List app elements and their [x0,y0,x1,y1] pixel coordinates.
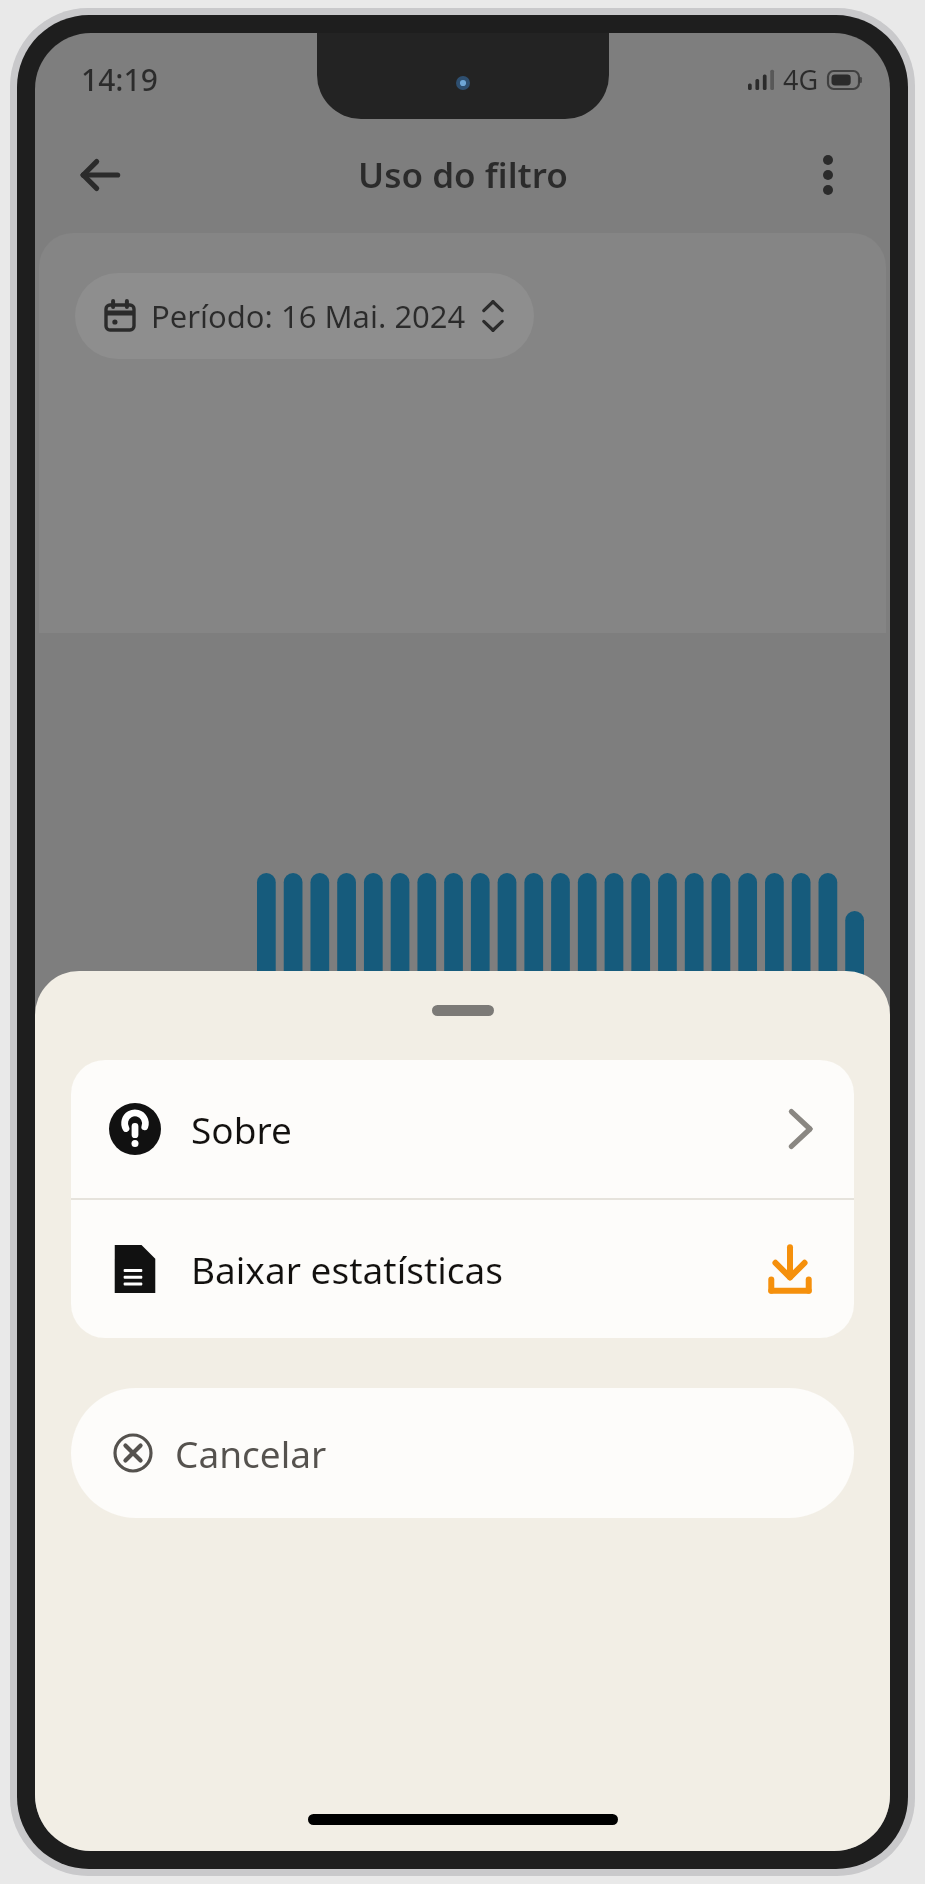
staticText: Baixar estatísticas [191,1244,504,1294]
button[interactable]: Mais opções [792,139,864,211]
staticText: 4G [783,61,819,98]
button[interactable]: Sobre [71,1060,854,1198]
button[interactable]: Período: 16 Mai. 2024 [75,273,534,359]
button[interactable]: Voltar [61,136,139,214]
staticText: Uso do filtro [358,151,568,199]
staticText: Período: 16 Mai. 2024 [151,295,466,337]
button[interactable]: Baixar estatísticas [71,1200,854,1338]
staticText: 14:19 [81,59,158,100]
staticText: Sobre [191,1104,292,1154]
staticText: Cancelar [175,1428,327,1478]
button[interactable]: Cancelar [71,1388,854,1518]
